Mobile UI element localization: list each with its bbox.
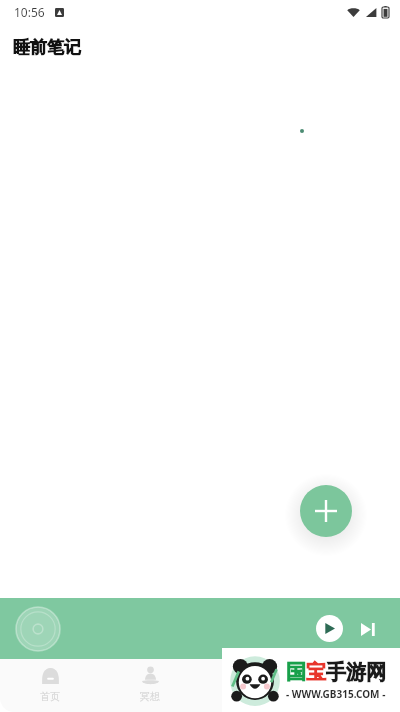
staticText: 首页 <box>40 690 60 703</box>
staticText: 手游网 <box>326 660 386 685</box>
staticText: 宝 <box>306 660 326 685</box>
button[interactable]: Play <box>316 615 343 642</box>
button[interactable]: Next track <box>356 617 380 641</box>
button[interactable]: 冥想 <box>100 659 200 712</box>
staticText: 国 <box>286 660 306 685</box>
staticText: 10:56 <box>14 4 45 20</box>
staticText: 冥想 <box>140 690 160 703</box>
staticText: - WWW.GB315.COM - <box>286 687 386 701</box>
button[interactable]: Add note <box>300 485 352 537</box>
staticText: 睡前笔记 <box>13 37 81 58</box>
button[interactable]: Now playing <box>0 598 400 659</box>
other: Now playing <box>16 607 60 651</box>
button[interactable]: 首页 <box>0 659 100 712</box>
